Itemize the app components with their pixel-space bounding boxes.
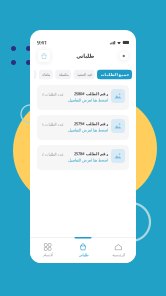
- button[interactable]: عدد الطلبات 3: [37, 85, 129, 110]
- staticText: رقم الطلب #2580: [73, 91, 107, 96]
- staticText: جميع الطلبات: [100, 72, 129, 77]
- button[interactable]: جميع الطلبات: [97, 70, 132, 79]
- button[interactable]: طلباتي: [65, 238, 101, 262]
- staticText: 9:41: [37, 39, 47, 46]
- staticText: مكتملة: [58, 72, 68, 77]
- button[interactable]: الرئيسية: [101, 238, 136, 262]
- button[interactable]: عدد الطلبات 2: [37, 145, 129, 170]
- button[interactable]: أقسام: [30, 238, 65, 262]
- button[interactable]: مرتجعة: [18, 70, 36, 79]
- button[interactable]: Cart: [38, 50, 50, 62]
- staticText: مرتجعة: [21, 72, 33, 77]
- button[interactable]: عدد الطلبات 5: [37, 115, 129, 140]
- staticText: عدد الطلبات 5: [41, 122, 63, 127]
- staticText: اضغط هنا لعرض التفاصيل: [67, 158, 107, 162]
- staticText: الرئيسية: [112, 252, 125, 257]
- staticText: رقم الطلب #2578: [73, 151, 107, 156]
- staticText: عدد الطلبات 3: [41, 92, 63, 97]
- button[interactable]: قيد التنفيذ: [74, 70, 95, 79]
- button[interactable]: ملغاة: [39, 70, 53, 79]
- staticText: ملغاة: [42, 72, 50, 77]
- staticText: طلباتي: [78, 252, 88, 257]
- staticText: قيد التنفيذ: [77, 72, 92, 77]
- button[interactable]: مكتملة: [55, 70, 71, 79]
- staticText: عدد الطلبات 2: [41, 152, 63, 157]
- staticText: اضغط هنا لعرض التفاصيل: [67, 98, 107, 102]
- staticText: اضغط هنا لعرض التفاصيل: [67, 128, 107, 132]
- staticText: أقسام: [43, 252, 53, 257]
- button[interactable]: Profile: [119, 52, 128, 60]
- staticText: طلباتي: [76, 53, 94, 59]
- staticText: رقم الطلب #2579: [73, 121, 107, 126]
